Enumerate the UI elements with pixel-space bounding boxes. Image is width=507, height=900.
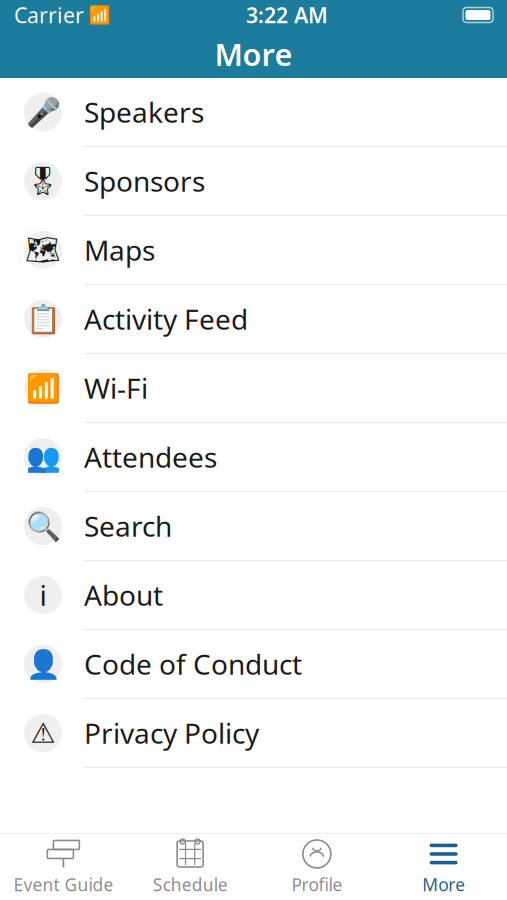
staticText: Schedule (153, 873, 228, 896)
staticText: About (84, 576, 163, 614)
staticText: 🔍 (25, 510, 60, 542)
button[interactable]: Event Guide (0, 830, 127, 900)
button[interactable]: 🗺 (0, 216, 507, 285)
button[interactable]: 📋 (0, 285, 507, 354)
staticText: Speakers (84, 93, 204, 131)
staticText: Code of Conduct (84, 645, 302, 683)
staticText: Event Guide (13, 873, 113, 896)
staticText: Profile (291, 873, 342, 896)
staticText: 🗺 (25, 234, 61, 266)
staticText: 🎤 (25, 96, 60, 128)
staticText: 🎖 (25, 165, 61, 197)
button[interactable]: More (380, 830, 507, 900)
staticText: Maps (84, 231, 155, 269)
staticText: More (214, 34, 292, 74)
staticText: 📶 (89, 5, 111, 25)
staticText: ⚠ (30, 717, 55, 749)
button[interactable]: ⚠ (0, 699, 507, 768)
button[interactable]: ℹ (0, 561, 507, 630)
staticText: Activity Feed (84, 300, 248, 338)
staticText: Sponsors (84, 162, 205, 200)
staticText: ℹ (39, 576, 46, 614)
staticText: Wi-Fi (84, 369, 148, 407)
staticText: Privacy Policy (84, 714, 259, 752)
staticText: 📶 (25, 372, 60, 404)
staticText: Search (84, 507, 172, 545)
button[interactable]: 🔍 (0, 492, 507, 561)
button[interactable]: 🎤 (0, 78, 507, 147)
staticText: 👥 (25, 441, 60, 473)
button[interactable]: 👥 (0, 423, 507, 492)
button[interactable]: Schedule (127, 830, 254, 900)
button[interactable]: 👤 (0, 630, 507, 699)
staticText: 📋 (25, 303, 60, 335)
button[interactable]: 📶 (0, 354, 507, 423)
staticText: 👤 (25, 648, 60, 680)
button[interactable]: Profile (253, 830, 380, 900)
staticText: 3:22 AM (246, 1, 328, 29)
staticText: Attendees (84, 438, 217, 476)
staticText: More (422, 873, 465, 896)
staticText: Carrier (14, 1, 84, 29)
button[interactable]: 🎖 (0, 147, 507, 216)
